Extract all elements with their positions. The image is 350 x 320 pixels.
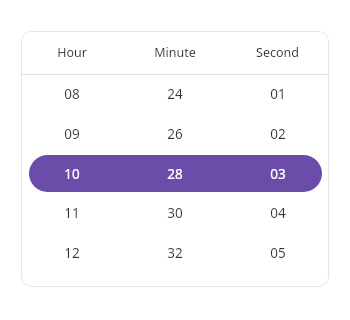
staticText: 30 <box>167 204 183 222</box>
button[interactable]: 28 <box>123 155 226 193</box>
staticText: 02 <box>270 125 286 143</box>
button[interactable]: 02 <box>226 115 329 153</box>
button[interactable]: Hour <box>21 31 123 74</box>
button[interactable]: Minute <box>123 31 226 74</box>
staticText: 03 <box>270 165 286 183</box>
button[interactable]: 04 <box>226 194 329 232</box>
button[interactable]: 11 <box>21 194 123 232</box>
button[interactable]: 32 <box>123 234 226 272</box>
staticText: 01 <box>270 85 286 103</box>
button[interactable]: 10 <box>21 155 123 193</box>
staticText: 24 <box>167 85 183 103</box>
staticText: 12 <box>64 244 80 262</box>
staticText: Hour <box>57 44 87 61</box>
staticText: 32 <box>167 244 183 262</box>
button[interactable]: 12 <box>21 234 123 272</box>
staticText: 28 <box>167 165 183 183</box>
staticText: 26 <box>167 125 183 143</box>
staticText: Minute <box>154 44 196 61</box>
staticText: 09 <box>64 125 80 143</box>
button[interactable]: 09 <box>21 115 123 153</box>
button[interactable]: 08 <box>21 75 123 113</box>
staticText: 04 <box>270 204 286 222</box>
staticText: 05 <box>270 244 286 262</box>
button[interactable]: 26 <box>123 115 226 153</box>
staticText: 08 <box>64 85 80 103</box>
button[interactable]: 05 <box>226 234 329 272</box>
button[interactable]: 01 <box>226 75 329 113</box>
button[interactable]: 24 <box>123 75 226 113</box>
button[interactable]: Second <box>226 31 329 74</box>
staticText: 11 <box>64 204 80 222</box>
staticText: Second <box>256 44 299 61</box>
button[interactable]: 03 <box>226 155 329 193</box>
button[interactable]: 30 <box>123 194 226 232</box>
staticText: 10 <box>64 165 80 183</box>
